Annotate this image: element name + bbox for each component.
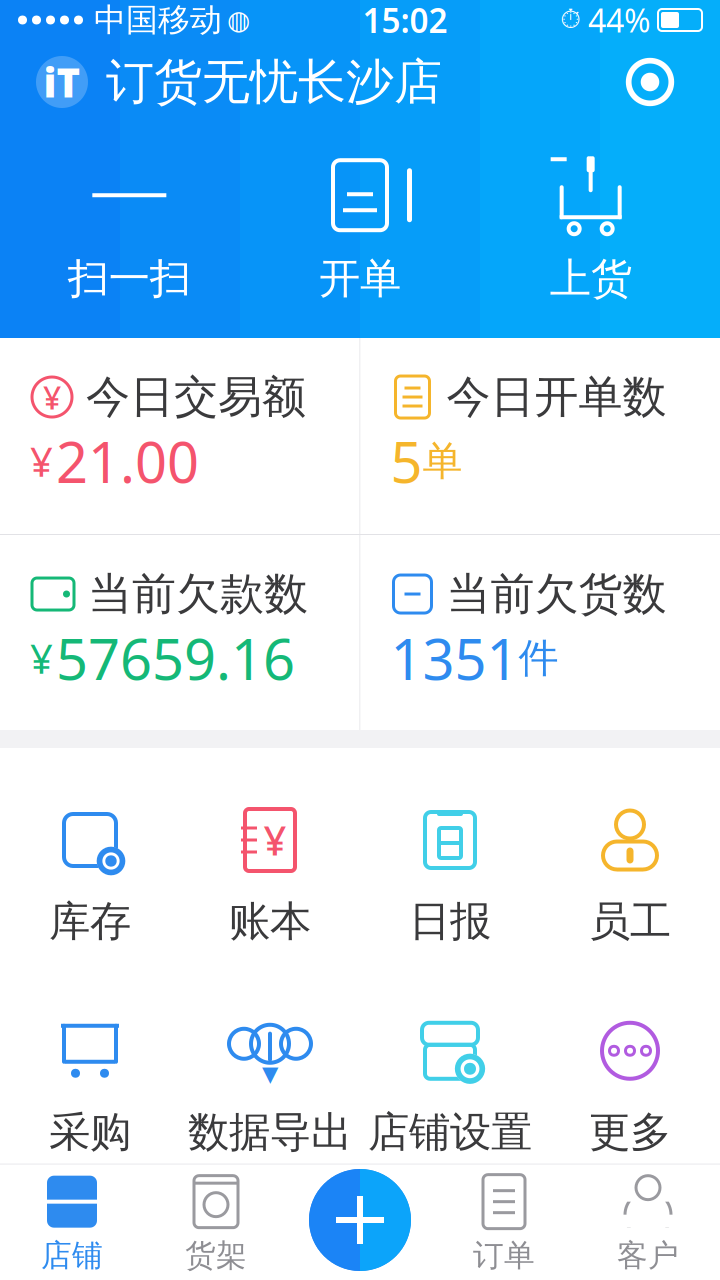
staticText: 21.00 bbox=[56, 424, 199, 498]
button[interactable]: 当前欠货数 bbox=[360, 535, 720, 730]
button[interactable]: 设置 bbox=[616, 48, 684, 116]
staticText: ¥ bbox=[263, 813, 286, 866]
button[interactable]: ¥ bbox=[180, 792, 360, 957]
staticText: ◍ bbox=[227, 5, 250, 35]
staticText: 店铺设置 bbox=[368, 1107, 532, 1158]
staticText: 订货无忧长沙店 bbox=[106, 52, 442, 111]
button[interactable]: 开单 bbox=[245, 149, 475, 310]
button[interactable]: 更多 bbox=[540, 1003, 720, 1168]
staticText: iT bbox=[43, 55, 80, 108]
button[interactable]: ¥ bbox=[0, 338, 359, 534]
staticText: ¥ bbox=[30, 632, 53, 685]
button[interactable]: 扫一扫 bbox=[14, 149, 245, 310]
button[interactable]: 店铺 bbox=[0, 1165, 144, 1280]
staticText: 上货 bbox=[550, 253, 632, 304]
staticText: 1351 bbox=[390, 621, 518, 695]
button[interactable]: 客户 bbox=[576, 1165, 720, 1280]
button[interactable]: 今日开单数 bbox=[360, 338, 720, 534]
button[interactable]: 日报 bbox=[360, 792, 540, 957]
staticText: 件 bbox=[518, 634, 558, 683]
button[interactable]: 员工 bbox=[540, 792, 720, 957]
staticText: 库存 bbox=[49, 896, 131, 947]
staticText: 更多 bbox=[589, 1107, 671, 1158]
staticText: 店铺 bbox=[41, 1237, 103, 1274]
staticText: 当前欠货数 bbox=[446, 567, 666, 621]
button[interactable]: 采购 bbox=[0, 1003, 180, 1168]
staticText: 员工 bbox=[589, 896, 671, 947]
staticText: 账本 bbox=[229, 896, 311, 947]
staticText: 今日交易额 bbox=[86, 370, 306, 424]
staticText: 今日开单数 bbox=[446, 370, 666, 424]
staticText: 货架 bbox=[185, 1237, 247, 1274]
staticText: ⏱ bbox=[560, 7, 581, 33]
button[interactable]: 上货 bbox=[475, 149, 706, 310]
staticText: 5 bbox=[390, 424, 422, 498]
staticText: 数据导出 bbox=[188, 1107, 352, 1158]
staticText: 客户 bbox=[617, 1237, 679, 1274]
staticText: 44% bbox=[588, 0, 651, 41]
staticText: 中国移动 bbox=[94, 0, 222, 40]
button[interactable]: ▼ bbox=[180, 1003, 360, 1168]
button[interactable]: 新建 bbox=[305, 1165, 415, 1275]
button[interactable]: 店铺设置 bbox=[360, 1003, 540, 1168]
staticText: 开单 bbox=[319, 253, 401, 304]
button[interactable]: 当前欠款数 bbox=[0, 535, 359, 730]
button[interactable]: 货架 bbox=[144, 1165, 288, 1280]
staticText: 采购 bbox=[49, 1107, 131, 1158]
staticText: 57659.16 bbox=[56, 621, 295, 695]
staticText: 订单 bbox=[473, 1237, 535, 1274]
staticText: 当前欠款数 bbox=[88, 567, 308, 621]
staticText: ¥ bbox=[30, 435, 53, 488]
staticText: 扫一扫 bbox=[68, 253, 191, 304]
staticText: ¥ bbox=[43, 376, 61, 418]
staticText: 15:02 bbox=[362, 0, 447, 42]
staticText: 日报 bbox=[409, 896, 491, 947]
button[interactable]: 库存 bbox=[0, 792, 180, 957]
staticText: ▼ bbox=[262, 1062, 278, 1086]
staticText: 单 bbox=[422, 437, 462, 486]
button[interactable]: 订单 bbox=[432, 1165, 576, 1280]
